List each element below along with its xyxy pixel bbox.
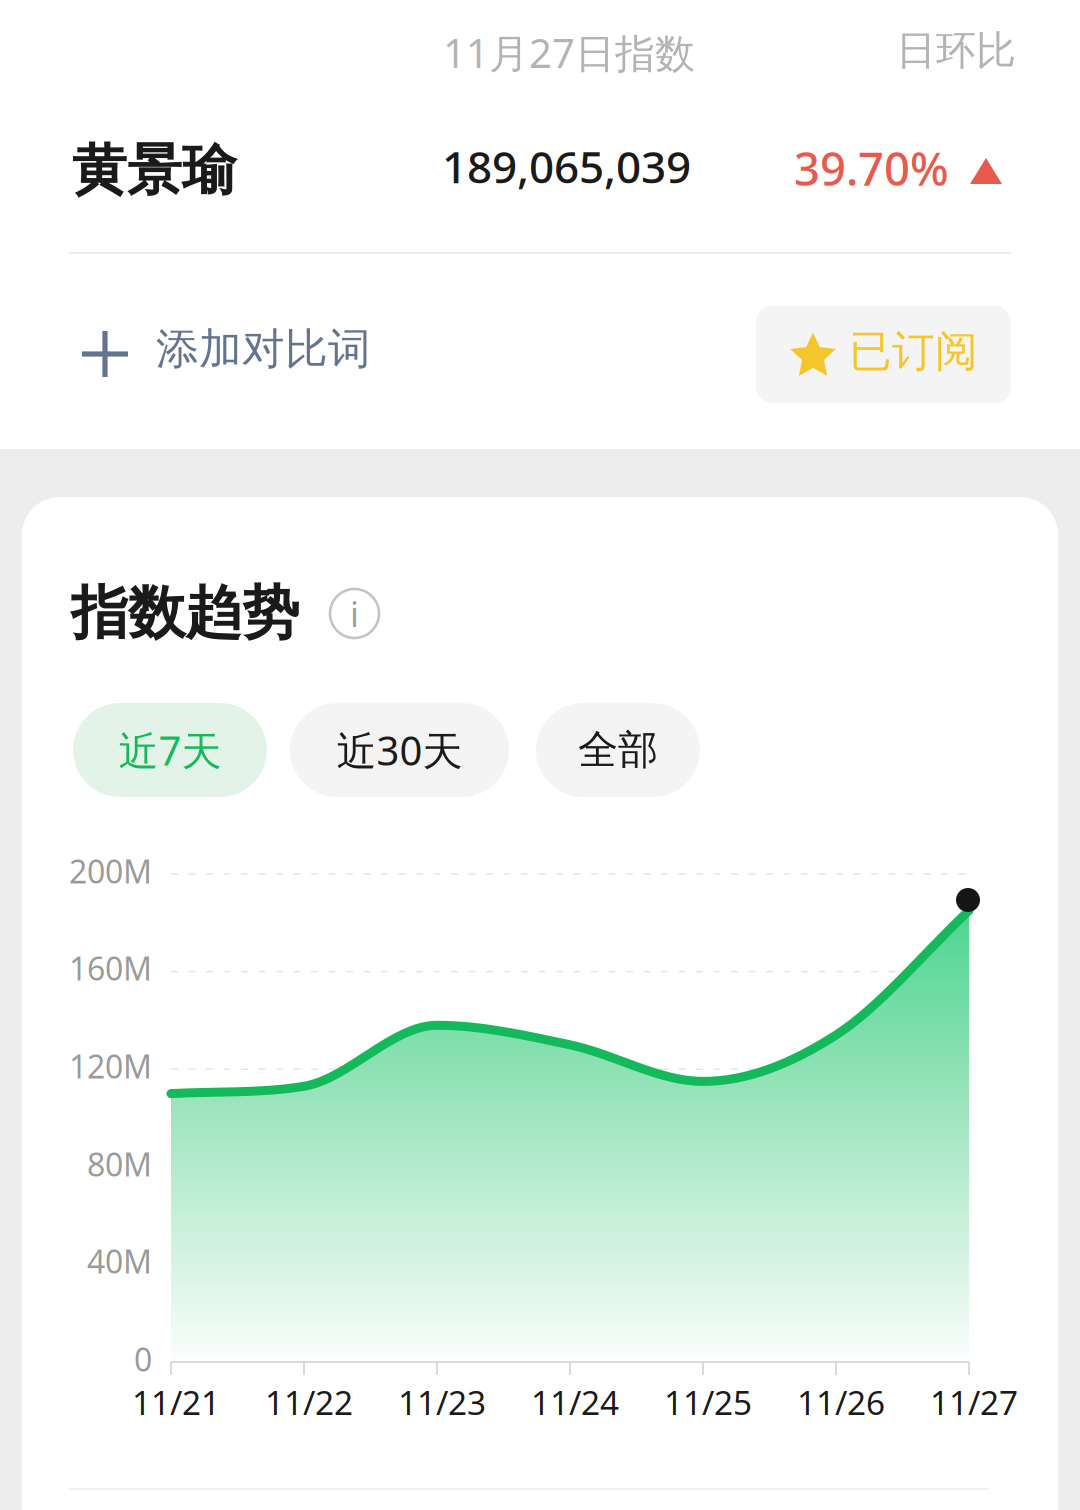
staticText: 11/23 (398, 1380, 486, 1424)
staticText: 近30天 (336, 723, 462, 776)
button[interactable]: 已订阅 (756, 306, 1011, 403)
staticText: 11/25 (664, 1380, 752, 1424)
staticText: 11月27日指数 (443, 26, 695, 79)
staticText: 添加对比词 (156, 323, 371, 375)
button[interactable]: 近30天 (290, 703, 509, 797)
staticText: 11/26 (797, 1380, 885, 1424)
staticText: 40M (87, 1240, 152, 1282)
staticText: 近7天 (118, 723, 221, 776)
staticText: 11/24 (531, 1380, 619, 1424)
button[interactable]: 全部 (536, 703, 700, 797)
button[interactable]: 近7天 (73, 703, 267, 797)
staticText: 160M (69, 947, 152, 989)
staticText: 120M (69, 1045, 152, 1087)
staticText: 11/22 (265, 1380, 353, 1424)
staticText: 200M (69, 850, 152, 892)
staticText: 指数趋势 (71, 578, 299, 648)
staticText: 黄景瑜 (72, 137, 237, 204)
staticText: 80M (87, 1143, 152, 1185)
staticText: 39.70% (794, 138, 949, 198)
staticText: 0 (134, 1338, 152, 1380)
staticText: 已订阅 (849, 325, 978, 378)
staticText: 日环比 (896, 26, 1016, 75)
button[interactable]: 添加对比词 (0, 279, 540, 429)
staticText: 189,065,039 (442, 137, 691, 195)
staticText: 11/21 (132, 1380, 220, 1424)
staticText: 全部 (578, 725, 658, 774)
staticText: 11/27 (930, 1380, 1018, 1424)
staticText: i (350, 590, 359, 636)
button[interactable]: More info (330, 589, 379, 638)
